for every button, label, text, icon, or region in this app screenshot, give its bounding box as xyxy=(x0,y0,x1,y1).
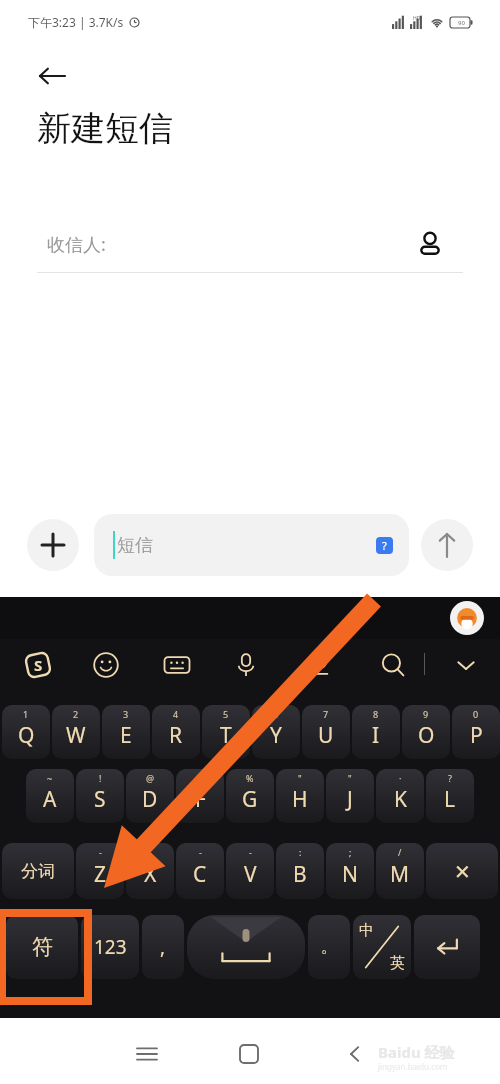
staticText: S xyxy=(34,655,43,675)
staticText: 123 xyxy=(94,934,127,960)
staticText: L xyxy=(444,785,456,814)
staticText: 中 xyxy=(359,921,374,940)
button[interactable]: Add attachment xyxy=(27,519,79,571)
button[interactable]: ? xyxy=(426,769,474,823)
button[interactable]: 3 xyxy=(102,705,150,759)
button[interactable] xyxy=(187,915,305,979)
button[interactable]: Search xyxy=(375,647,411,683)
staticText: # xyxy=(197,772,203,784)
button[interactable]: Back xyxy=(28,52,76,100)
button[interactable]: - xyxy=(126,843,174,899)
button[interactable]: / xyxy=(376,843,424,899)
staticText: 收信人: xyxy=(47,232,106,257)
button[interactable]: 5 xyxy=(202,705,250,759)
button[interactable]: 7 xyxy=(302,705,350,759)
button[interactable]: - xyxy=(76,843,124,899)
button[interactable]: - xyxy=(226,843,274,899)
staticText: D xyxy=(142,785,158,814)
button[interactable]: % xyxy=(226,769,274,823)
button[interactable]: Handwriting xyxy=(300,647,336,683)
staticText: 3 xyxy=(123,708,129,720)
button[interactable]: 。 xyxy=(308,915,350,979)
staticText: N xyxy=(342,860,358,889)
staticText: - xyxy=(199,846,202,858)
staticText: @ xyxy=(146,772,155,784)
staticText: 新建短信 xyxy=(37,107,173,150)
staticText: V xyxy=(244,860,257,889)
staticText: % xyxy=(246,772,254,784)
staticText: 6 xyxy=(273,708,279,720)
button[interactable]: 符 xyxy=(6,915,78,979)
button[interactable]: Emoji xyxy=(88,647,124,683)
staticText: I xyxy=(372,721,380,750)
button[interactable]: 9 xyxy=(402,705,450,759)
button[interactable]: 收信人: xyxy=(0,215,500,273)
button[interactable]: 中 xyxy=(353,915,411,979)
staticText: C xyxy=(193,860,207,889)
button[interactable]: - xyxy=(176,843,224,899)
staticText: - xyxy=(249,846,252,858)
staticText: K xyxy=(394,785,407,814)
staticText: A xyxy=(43,785,57,814)
staticText: H xyxy=(292,785,308,814)
button[interactable]: 分词 xyxy=(2,843,74,899)
button[interactable]: Keyboard layout xyxy=(159,647,195,683)
staticText: S xyxy=(94,785,106,814)
button[interactable]: · xyxy=(376,769,424,823)
button[interactable]: " xyxy=(326,769,374,823)
staticText: " xyxy=(348,772,352,784)
staticText: · xyxy=(399,772,402,784)
staticText: R xyxy=(169,721,183,750)
button[interactable]: 2 xyxy=(52,705,100,759)
button[interactable]: 8 xyxy=(352,705,400,759)
button[interactable]: ; xyxy=(326,843,374,899)
button[interactable]: @ xyxy=(126,769,174,823)
staticText: 8 xyxy=(373,708,379,720)
button[interactable]: 123 xyxy=(81,915,139,979)
staticText: Y xyxy=(270,721,282,750)
staticText: 2 xyxy=(73,708,79,720)
button[interactable]: , xyxy=(142,915,184,979)
button[interactable]: ✕ xyxy=(426,843,498,899)
button[interactable]: Hide keyboard xyxy=(448,647,484,683)
button[interactable]: Voice input xyxy=(228,647,264,683)
button[interactable]: Choose contact xyxy=(404,218,456,270)
button[interactable]: # xyxy=(176,769,224,823)
button[interactable]: Back xyxy=(333,1032,377,1076)
button[interactable]: 1 xyxy=(2,705,50,759)
staticText: - xyxy=(99,846,102,858)
button[interactable]: " xyxy=(276,769,324,823)
staticText: ; xyxy=(349,846,352,858)
staticText: 4 xyxy=(173,708,179,720)
staticText: " xyxy=(298,772,302,784)
staticText: O xyxy=(418,721,435,750)
staticText: - xyxy=(149,846,152,858)
staticText: X xyxy=(144,860,157,889)
button[interactable]: 6 xyxy=(252,705,300,759)
staticText: G xyxy=(242,785,258,814)
staticText: 分词 xyxy=(21,861,55,882)
button[interactable]: 4 xyxy=(152,705,200,759)
staticText: T xyxy=(220,721,232,750)
staticText: F xyxy=(195,785,206,814)
button[interactable]: : xyxy=(276,843,324,899)
button[interactable]: 0 xyxy=(452,705,500,759)
staticText: J xyxy=(347,785,353,814)
staticText: ! xyxy=(99,772,102,784)
staticText: B xyxy=(293,860,307,889)
button[interactable] xyxy=(414,915,480,979)
button[interactable]: Send xyxy=(421,519,473,571)
button[interactable]: Sogou menu xyxy=(20,647,56,683)
staticText: U xyxy=(318,721,334,750)
staticText: jingyan.baidu.com xyxy=(378,1061,448,1072)
button[interactable]: Recents xyxy=(125,1032,169,1076)
staticText: ✕ xyxy=(454,860,471,883)
button[interactable]: ~ xyxy=(26,769,74,823)
button[interactable]: ! xyxy=(76,769,124,823)
button[interactable]: Home xyxy=(227,1032,271,1076)
button[interactable]: 短信 xyxy=(94,514,409,576)
button[interactable]: Account xyxy=(450,601,484,635)
staticText: Q xyxy=(18,721,35,750)
staticText: ? xyxy=(382,538,387,553)
staticText: 英 xyxy=(390,954,405,973)
